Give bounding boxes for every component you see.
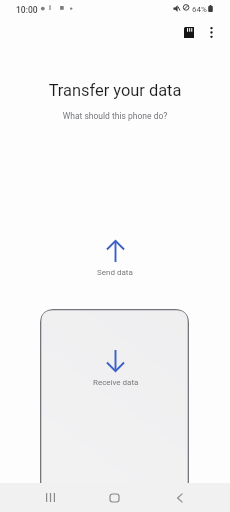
button[interactable]: Receive data	[40, 309, 189, 483]
button[interactable]: Send data	[75, 234, 155, 277]
staticText: 10:00	[16, 5, 38, 15]
button[interactable]: More options	[199, 20, 223, 44]
button[interactable]: SD card	[177, 20, 201, 44]
staticText: What should this phone do?	[0, 111, 230, 121]
staticText: Transfer your data	[0, 81, 230, 100]
button[interactable]: Recents	[36, 483, 65, 512]
button[interactable]: Home	[100, 483, 129, 512]
button[interactable]: Back	[165, 483, 194, 512]
staticText: Send data	[97, 268, 133, 277]
staticText: 64%	[192, 5, 207, 14]
staticText: Receive data	[93, 378, 139, 387]
